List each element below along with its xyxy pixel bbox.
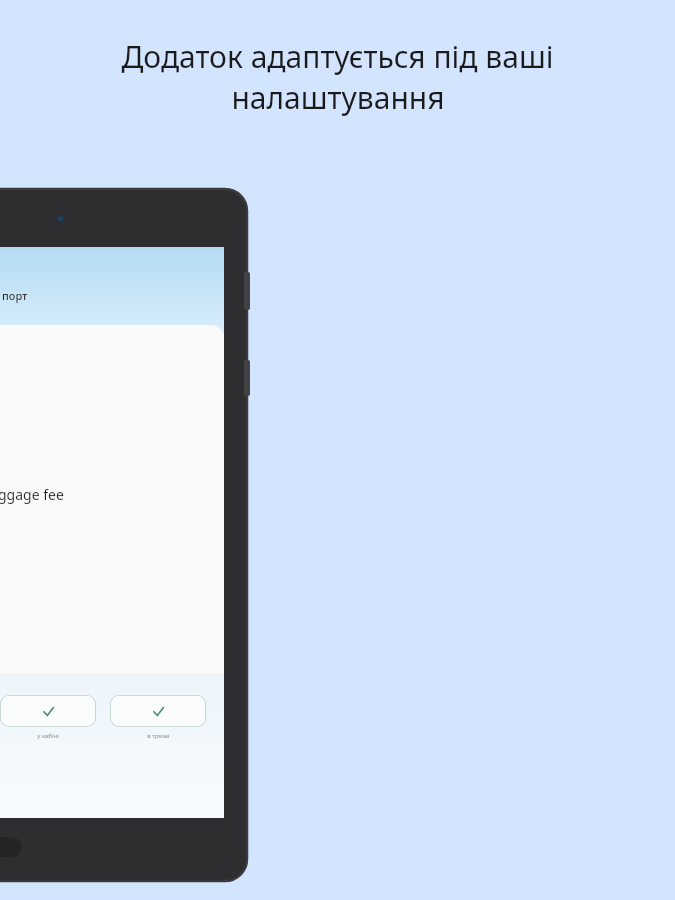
button[interactable]: в трюмі <box>110 695 206 727</box>
button[interactable]: у кабіні <box>0 695 96 727</box>
staticText: налаштування <box>231 77 445 118</box>
staticText: порт <box>2 288 28 303</box>
staticText: ggage fee <box>0 485 64 504</box>
staticText: Додаток адаптується під ваші <box>121 36 554 77</box>
button[interactable]: ggage fee <box>0 325 224 673</box>
staticText: в трюмі <box>147 732 170 740</box>
staticText: у кабіні <box>37 732 59 740</box>
